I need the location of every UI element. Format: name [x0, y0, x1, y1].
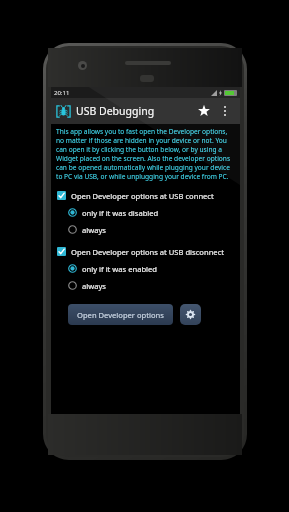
button[interactable]: always [51, 221, 240, 238]
button[interactable]: only if it was enabled [51, 260, 240, 277]
staticText: USB Debugging [76, 104, 155, 118]
staticText: only if it was disabled [82, 208, 159, 218]
button[interactable]: Open Developer options [68, 304, 173, 325]
button[interactable]: Open Developer options at USB disconnect [51, 243, 240, 260]
staticText: only if it was enabled [82, 264, 157, 274]
button[interactable]: More options [215, 101, 235, 121]
button[interactable]: Favorite [193, 100, 215, 122]
button[interactable]: only if it was disabled [51, 204, 240, 221]
staticText: Open Developer options at USB disconnect [71, 247, 225, 257]
staticText: Open Developer options at USB connect [71, 191, 214, 201]
staticText: 20:11 [54, 89, 70, 97]
button[interactable]: Settings [180, 304, 201, 325]
button[interactable]: always [51, 277, 240, 294]
staticText: Open Developer options [77, 310, 164, 320]
staticText: always [82, 281, 106, 291]
button[interactable]: Open Developer options at USB connect [51, 187, 240, 204]
staticText: always [82, 225, 106, 235]
staticText: This app allows you to fast open the Dev… [56, 127, 235, 181]
